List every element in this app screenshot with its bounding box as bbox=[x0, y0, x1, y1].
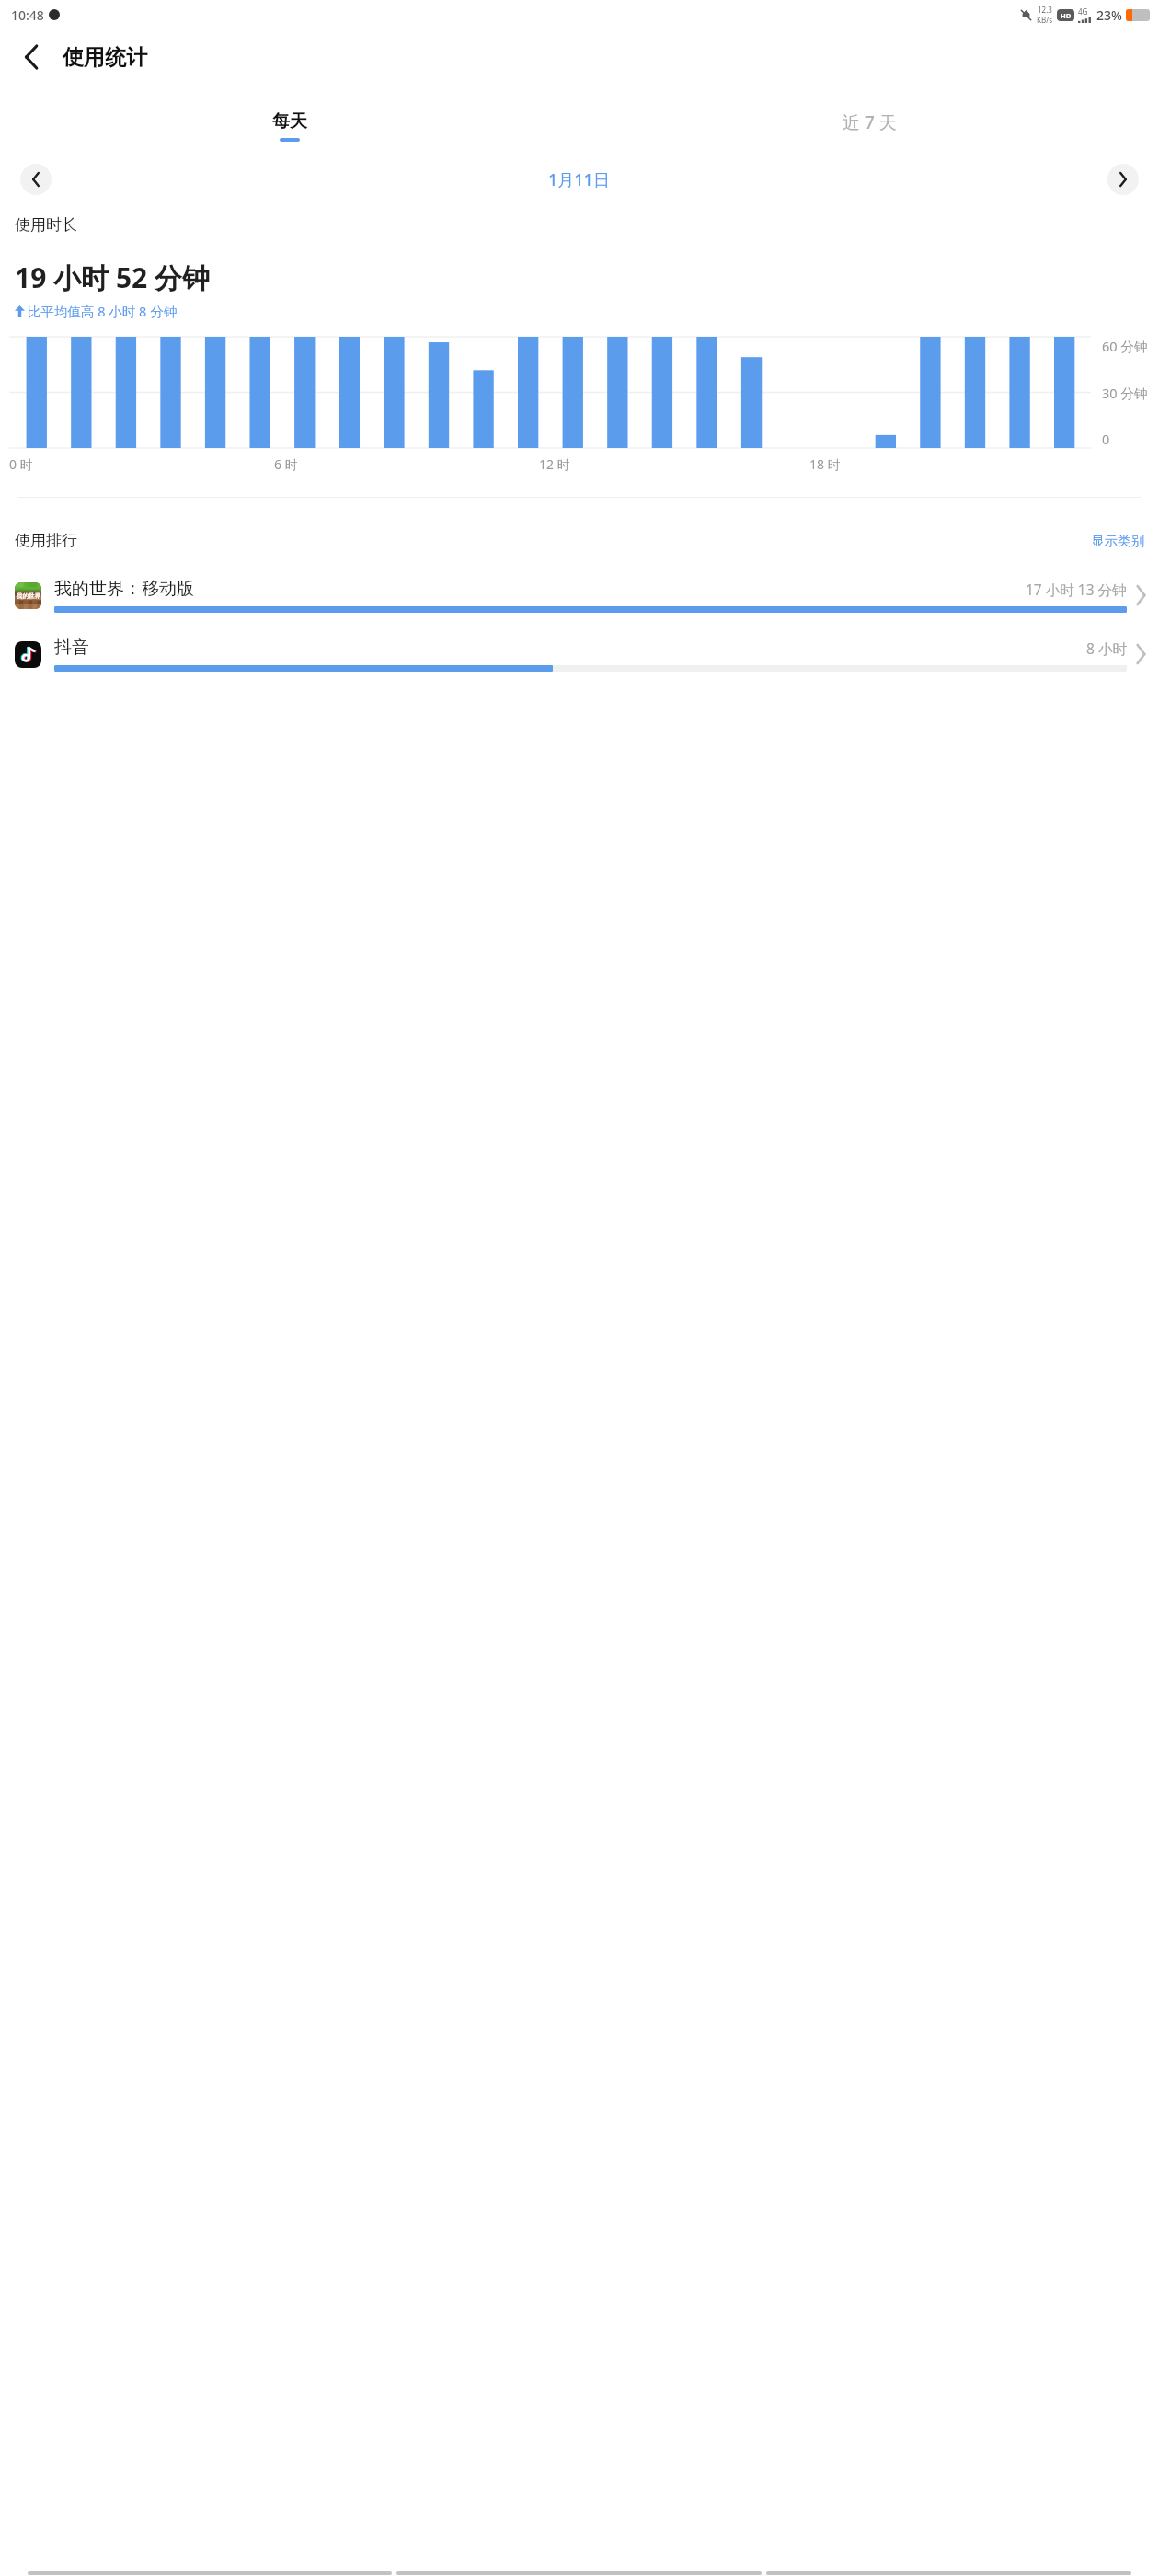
staticText: 18 时 bbox=[809, 455, 841, 473]
staticText: 23% bbox=[1096, 6, 1122, 24]
button[interactable]: Navigation bbox=[28, 2571, 392, 2575]
staticText: HD bbox=[1061, 11, 1072, 20]
staticText: 比平均值高 8 小时 8 分钟 bbox=[28, 302, 178, 320]
staticText: 6 时 bbox=[274, 455, 298, 473]
staticText: 使用统计 bbox=[63, 44, 147, 71]
staticText: 10:48 bbox=[11, 6, 44, 24]
staticText: 抖音 bbox=[54, 637, 89, 659]
button[interactable]: Back bbox=[11, 37, 52, 77]
staticText: KB/s bbox=[1037, 15, 1052, 25]
button[interactable]: Navigation bbox=[396, 2571, 762, 2575]
button[interactable]: 近 7 天 bbox=[579, 110, 1159, 144]
button[interactable]: 我的世界 bbox=[0, 578, 1159, 613]
staticText: 使用排行 bbox=[15, 531, 77, 550]
staticText: 60 分钟 bbox=[1102, 337, 1148, 355]
staticText: 显示类别 bbox=[1091, 533, 1144, 549]
staticText: 我的世界：移动版 bbox=[54, 578, 194, 600]
button[interactable]: 显示类别 bbox=[1091, 533, 1144, 549]
button[interactable]: 每天 bbox=[0, 110, 579, 142]
staticText: 0 bbox=[1102, 430, 1110, 448]
staticText: 每天 bbox=[272, 110, 307, 132]
staticText: 我的世界 bbox=[17, 592, 40, 600]
staticText: 0 时 bbox=[9, 455, 33, 473]
staticText: 1月11日 bbox=[548, 168, 610, 191]
button[interactable]: Navigation bbox=[766, 2571, 1131, 2575]
staticText: 8 小时 bbox=[1086, 638, 1127, 658]
staticText: 使用时长 bbox=[15, 215, 77, 235]
button[interactable]: Next day bbox=[1107, 164, 1139, 195]
staticText: 近 7 天 bbox=[843, 110, 897, 134]
staticText: 30 分钟 bbox=[1102, 384, 1148, 402]
staticText: 4G bbox=[1078, 6, 1088, 17]
staticText: 12.3 bbox=[1038, 5, 1052, 15]
staticText: 17 小时 13 分钟 bbox=[1026, 580, 1127, 599]
staticText: 12 时 bbox=[539, 455, 570, 473]
button[interactable]: 1月11日 bbox=[548, 168, 610, 191]
staticText: 19 小时 52 分钟 bbox=[15, 259, 211, 296]
button[interactable]: Previous day bbox=[20, 164, 52, 195]
button[interactable]: 抖音 bbox=[0, 637, 1159, 672]
